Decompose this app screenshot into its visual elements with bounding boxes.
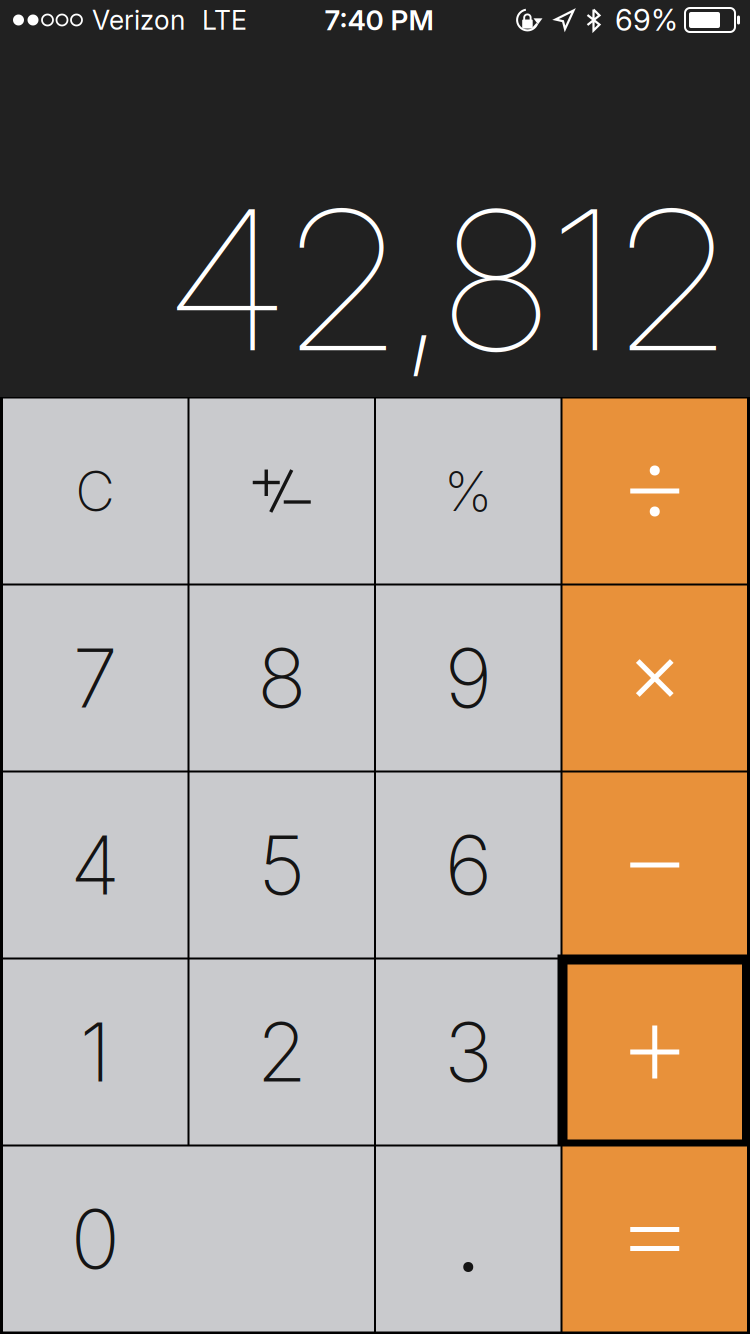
button[interactable]: Divide xyxy=(562,398,747,583)
staticText: 5 xyxy=(258,816,305,914)
button[interactable]: Clear xyxy=(3,398,187,583)
button[interactable]: 9 xyxy=(376,585,560,770)
button[interactable]: Multiply xyxy=(562,585,747,770)
staticText: 7:40 PM xyxy=(324,3,433,37)
button[interactable]: 4 xyxy=(3,772,187,957)
staticText: C xyxy=(75,458,115,524)
staticText: 69% xyxy=(615,2,678,38)
button[interactable]: Plus minus xyxy=(189,398,374,583)
staticText: LTE xyxy=(202,4,247,36)
button[interactable]: Percent xyxy=(376,398,560,583)
button[interactable]: Subtract xyxy=(562,772,747,957)
button[interactable]: Equals xyxy=(562,1146,747,1331)
staticText: 8 xyxy=(257,629,306,727)
button[interactable]: 0 xyxy=(3,1146,374,1331)
staticText: 1 xyxy=(80,1003,111,1101)
button[interactable]: 7 xyxy=(3,585,187,770)
button[interactable]: 1 xyxy=(3,959,187,1144)
staticText: Verizon xyxy=(92,4,185,36)
staticText: 6 xyxy=(445,816,492,914)
staticText: 4 xyxy=(70,816,120,914)
button[interactable]: 8 xyxy=(189,585,374,770)
button[interactable]: Decimal point xyxy=(376,1146,560,1331)
button[interactable]: 2 xyxy=(189,959,374,1144)
button[interactable]: 5 xyxy=(189,772,374,957)
staticText: 7 xyxy=(73,629,118,727)
staticText: 9 xyxy=(445,629,492,727)
staticText: 3 xyxy=(444,1003,492,1101)
staticText: % xyxy=(444,458,493,524)
button[interactable]: 3 xyxy=(376,959,560,1144)
button[interactable]: 6 xyxy=(376,772,560,957)
staticText: 2 xyxy=(257,1003,307,1101)
staticText: 42,812 xyxy=(171,163,725,397)
button[interactable]: Add xyxy=(562,959,747,1144)
staticText: 0 xyxy=(71,1190,120,1288)
